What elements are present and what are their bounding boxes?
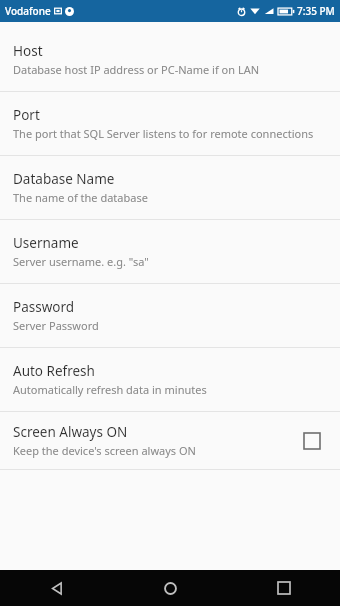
button[interactable]: Host [0,28,340,91]
staticText: Port [13,106,40,124]
staticText: Automatically refresh data in minutes [13,382,207,397]
staticText: Server username. e.g. "sa" [13,254,149,269]
staticText: Screen Always ON [13,423,128,441]
button[interactable]: Back [0,570,114,606]
staticText: Auto Refresh [13,362,95,380]
staticText: Username [13,234,79,252]
button[interactable]: Screen Always ON checkbox [297,426,327,456]
button[interactable]: Auto Refresh [0,348,340,411]
staticText: The name of the database [13,190,148,205]
staticText: Database host IP address or PC-Name if o… [13,62,260,77]
staticText: Keep the device's screen always ON [13,443,196,458]
button[interactable]: Recent apps [227,570,340,606]
button[interactable]: Database Name [0,156,340,219]
staticText: Password [13,298,75,316]
button[interactable]: Port [0,92,340,155]
button[interactable]: Home [114,570,227,606]
button[interactable]: Username [0,220,340,283]
button[interactable]: Password [0,284,340,347]
staticText: Vodafone [5,4,51,18]
button[interactable]: Screen Always ON [0,412,340,469]
staticText: Database Name [13,170,115,188]
staticText: 7:35 PM [297,4,335,18]
staticText: Server Password [13,318,99,333]
staticText: The port that SQL Server listens to for … [13,126,314,141]
staticText: Host [13,42,43,60]
